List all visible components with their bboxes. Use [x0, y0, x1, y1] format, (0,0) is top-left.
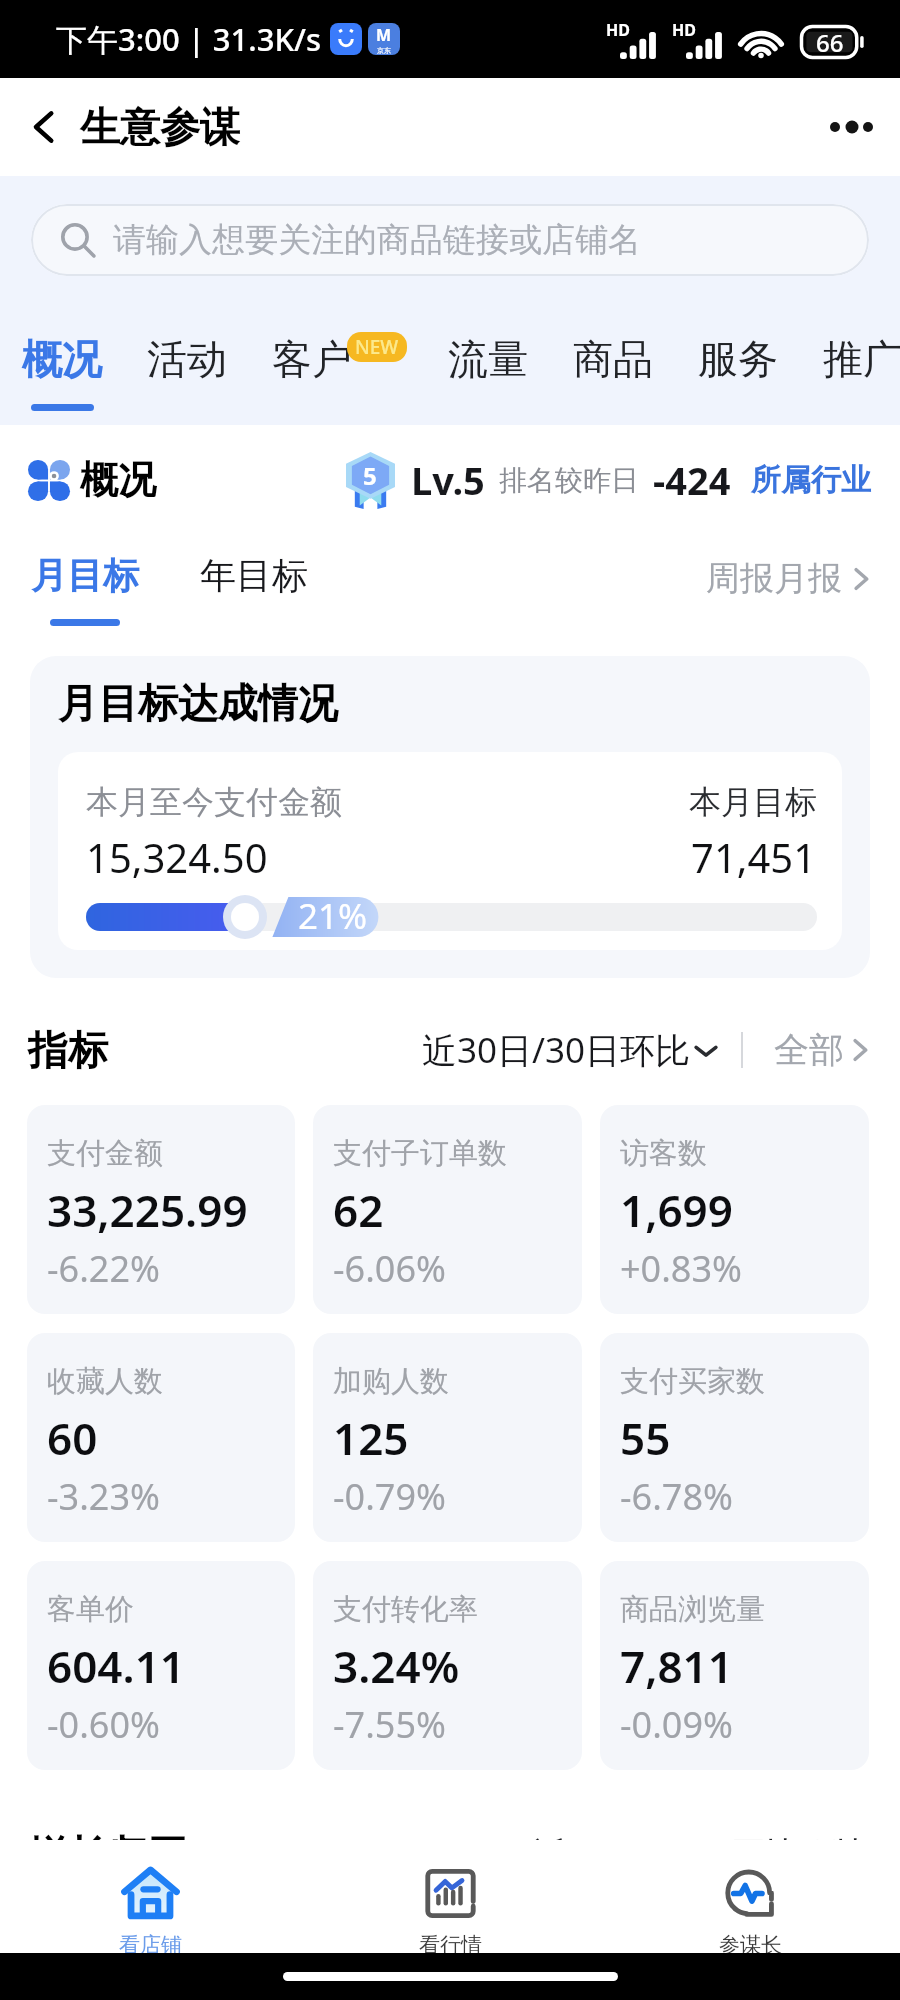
staticText: NEW [355, 334, 399, 360]
staticText: 京东 [377, 46, 391, 55]
staticText: -0.60% [47, 1700, 160, 1749]
button[interactable]: 支付子订单数 [313, 1105, 582, 1314]
staticText: 访客数 [620, 1135, 707, 1172]
staticText: +0.83% [620, 1244, 742, 1293]
staticText: 21% [298, 892, 368, 940]
button[interactable]: 流量 [448, 290, 528, 404]
staticText: 客单价 [47, 1591, 134, 1628]
staticText: 指标 [28, 1025, 108, 1075]
staticText: 15,324.50 [86, 830, 268, 884]
button[interactable]: 支付买家数 [600, 1333, 869, 1542]
button[interactable]: 所属行业 [751, 461, 871, 499]
staticText: 近30日/30日同比环比 [533, 1830, 872, 1840]
button[interactable]: 月目标达成情况 [30, 656, 870, 978]
staticText: 活动 [147, 334, 227, 384]
button[interactable]: 概况 [22, 290, 102, 411]
staticText: 3.24% [333, 1636, 460, 1696]
staticText: 5 [363, 459, 377, 492]
button[interactable]: 全部 [774, 1028, 871, 1072]
staticText: -424 [653, 454, 731, 506]
staticText: 看店铺 [119, 1932, 182, 1953]
staticText: 全部 [774, 1028, 844, 1072]
staticText: 本月目标 [689, 782, 817, 822]
button[interactable]: 收藏人数 [27, 1333, 295, 1542]
staticText: 所属行业 [751, 461, 871, 499]
staticText: 本月至今支付金额 [86, 782, 342, 822]
button[interactable]: 推广 [823, 290, 900, 404]
button[interactable]: 加购人数 [313, 1333, 582, 1542]
staticText: HD [606, 19, 630, 41]
staticText: 7,811 [620, 1636, 733, 1696]
staticText: 概况 [22, 334, 102, 384]
staticText: 加购人数 [333, 1363, 449, 1400]
staticText: 请输入想要关注的商品链接或店铺名 [113, 219, 641, 261]
staticText: 增长归因 [28, 1830, 188, 1840]
button[interactable]: 年目标 [200, 535, 308, 598]
staticText: -6.06% [333, 1244, 446, 1293]
staticText: 月目标达成情况 [58, 678, 338, 728]
button[interactable]: 参谋长 [600, 1840, 900, 1953]
staticText: M [376, 24, 392, 46]
staticText: -0.79% [333, 1472, 446, 1521]
staticText: 62 [333, 1180, 384, 1240]
staticText: 参谋长 [719, 1932, 782, 1953]
staticText: 推广 [823, 334, 900, 384]
staticText: 生意参谋 [80, 102, 240, 152]
staticText: 月目标 [31, 553, 139, 598]
button[interactable]: 近30日/30日环比 [422, 1026, 719, 1074]
staticText: 支付转化率 [333, 1591, 478, 1628]
button[interactable]: 看店铺 [0, 1840, 300, 1953]
staticText: 近30日/30日环比 [422, 1026, 691, 1074]
staticText: 71,451 [691, 830, 817, 884]
button[interactable]: 活动 [147, 290, 227, 404]
staticText: -7.55% [333, 1700, 446, 1749]
staticText: 支付买家数 [620, 1363, 765, 1400]
staticText: 年目标 [200, 553, 308, 598]
staticText: -6.22% [47, 1244, 160, 1293]
button[interactable]: 商品浏览量 [600, 1561, 869, 1770]
staticText: 概况 [80, 456, 156, 504]
button[interactable]: 商品 [573, 290, 653, 404]
staticText: 排名较昨日 [499, 463, 639, 498]
staticText: 55 [620, 1408, 671, 1468]
button[interactable]: Back [17, 100, 71, 154]
staticText: 支付金额 [47, 1135, 163, 1172]
staticText: 125 [333, 1408, 409, 1468]
button[interactable]: 月目标 [31, 535, 139, 626]
staticText: 1,699 [620, 1180, 733, 1240]
button[interactable]: 支付金额 [27, 1105, 295, 1314]
button[interactable]: 请输入想要关注的商品链接或店铺名 [31, 204, 869, 276]
staticText: 下午3:00 | 31.3K/s [56, 18, 322, 60]
staticText: Lv.5 [411, 454, 485, 506]
staticText: 看行情 [419, 1932, 482, 1953]
staticText: -6.78% [620, 1472, 733, 1521]
staticText: 支付子订单数 [333, 1135, 507, 1172]
staticText: 周报月报 [706, 557, 842, 600]
staticText: HD [672, 19, 696, 41]
button[interactable]: More options [817, 92, 887, 162]
staticText: 33,225.99 [47, 1180, 248, 1240]
button[interactable]: 服务 [698, 290, 778, 404]
staticText: 客户 [272, 334, 352, 384]
staticText: 服务 [698, 334, 778, 384]
staticText: -0.09% [620, 1700, 733, 1749]
button[interactable]: 看行情 [300, 1840, 600, 1953]
staticText: -3.23% [47, 1472, 160, 1521]
staticText: 66 [816, 26, 844, 59]
button[interactable]: 客单价 [27, 1561, 295, 1770]
staticText: 流量 [448, 334, 528, 384]
staticText: 商品 [573, 334, 653, 384]
staticText: 商品浏览量 [620, 1591, 765, 1628]
button[interactable]: 周报月报 [706, 535, 872, 600]
staticText: 60 [47, 1408, 98, 1468]
button[interactable]: 访客数 [600, 1105, 869, 1314]
button[interactable]: 支付转化率 [313, 1561, 582, 1770]
staticText: 604.11 [47, 1636, 185, 1696]
staticText: 收藏人数 [47, 1363, 163, 1400]
button[interactable]: 客户 [272, 290, 352, 404]
